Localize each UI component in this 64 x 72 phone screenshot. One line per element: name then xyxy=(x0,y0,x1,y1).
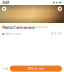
button[interactable]: Add to cart xyxy=(10,66,62,72)
staticText: 9:41 xyxy=(2,0,9,5)
staticText: Add to cart xyxy=(28,67,44,70)
button[interactable]: Favorite xyxy=(58,7,62,11)
button[interactable]: Back xyxy=(2,7,6,11)
staticText: Open now xyxy=(5,32,20,36)
staticText: $12.50 xyxy=(51,32,62,36)
staticText: Total xyxy=(2,67,8,70)
staticText: Pasta Carbonara xyxy=(2,25,34,30)
